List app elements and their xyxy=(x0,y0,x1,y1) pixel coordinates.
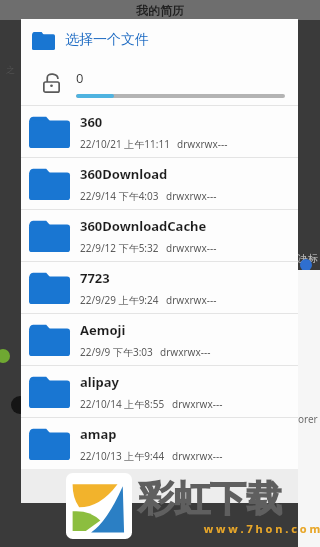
staticText: 22/9/12 下午5:32 xyxy=(80,241,159,255)
staticText: 选择一个文件 xyxy=(65,31,149,49)
staticText: Aemoji xyxy=(80,321,126,339)
button[interactable]: Unlock xyxy=(36,68,66,98)
staticText: orer xyxy=(298,412,318,426)
staticText: 360DownloadCache xyxy=(80,217,207,235)
staticText: drwxrwx--- xyxy=(172,449,223,463)
button[interactable]: 360Download xyxy=(21,158,298,209)
button[interactable]: 7723 xyxy=(21,262,298,313)
button[interactable]: 选择一个文件 xyxy=(21,19,298,61)
staticText: 决标 xyxy=(298,252,318,265)
staticText: 22/9/29 上午9:24 xyxy=(80,293,159,307)
staticText: 360 xyxy=(80,113,103,131)
staticText: 0 xyxy=(76,69,84,87)
staticText: drwxrwx--- xyxy=(177,137,228,151)
staticText: 7723 xyxy=(80,269,110,287)
staticText: 我的简历 xyxy=(136,3,184,18)
staticText: alipay xyxy=(80,373,119,391)
staticText: drwxrwx--- xyxy=(166,293,217,307)
staticText: 22/10/14 上午8:55 xyxy=(80,397,165,411)
staticText: amap xyxy=(80,425,117,443)
button[interactable]: amap xyxy=(21,418,298,469)
staticText: 彩虹下载 xyxy=(138,476,282,521)
staticText: w w w . 7 h o n . c o m xyxy=(138,521,320,536)
button[interactable]: 360 xyxy=(21,106,298,157)
staticText: drwxrwx--- xyxy=(172,397,223,411)
staticText: 之 xyxy=(6,64,15,75)
staticText: drwxrwx--- xyxy=(166,241,217,255)
button[interactable]: alipay xyxy=(21,366,298,417)
staticText: drwxrwx--- xyxy=(160,345,211,359)
staticText: 22/10/13 上午9:44 xyxy=(80,449,165,463)
staticText: 360Download xyxy=(80,165,168,183)
button[interactable]: Aemoji xyxy=(21,314,298,365)
staticText: 22/9/9 下午3:03 xyxy=(80,345,153,359)
staticText: drwxrwx--- xyxy=(166,189,217,203)
button[interactable]: 360DownloadCache xyxy=(21,210,298,261)
staticText: 22/10/21 上午11:11 xyxy=(80,137,170,151)
staticText: 22/9/14 下午4:03 xyxy=(80,189,159,203)
